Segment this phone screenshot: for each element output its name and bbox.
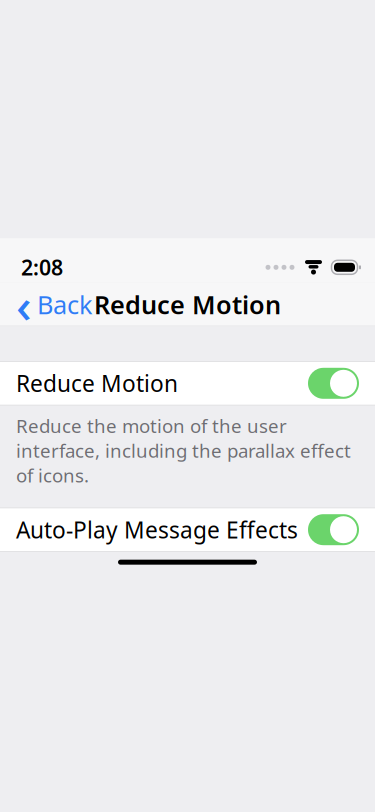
staticText: Reduce Motion [16, 368, 178, 398]
button[interactable]: ‹ [8, 266, 101, 342]
button[interactable]: Auto-Play Message Effects [0, 508, 375, 552]
staticText: Reduce the motion of the user interface,… [16, 413, 351, 488]
staticText: Reduce Motion [94, 287, 281, 321]
staticText: Back [37, 287, 93, 321]
staticText: ‹ [16, 272, 32, 336]
staticText: Auto-Play Message Effects [16, 515, 298, 545]
staticText: 2:08 [21, 253, 63, 281]
button[interactable]: Reduce Motion [0, 361, 375, 405]
